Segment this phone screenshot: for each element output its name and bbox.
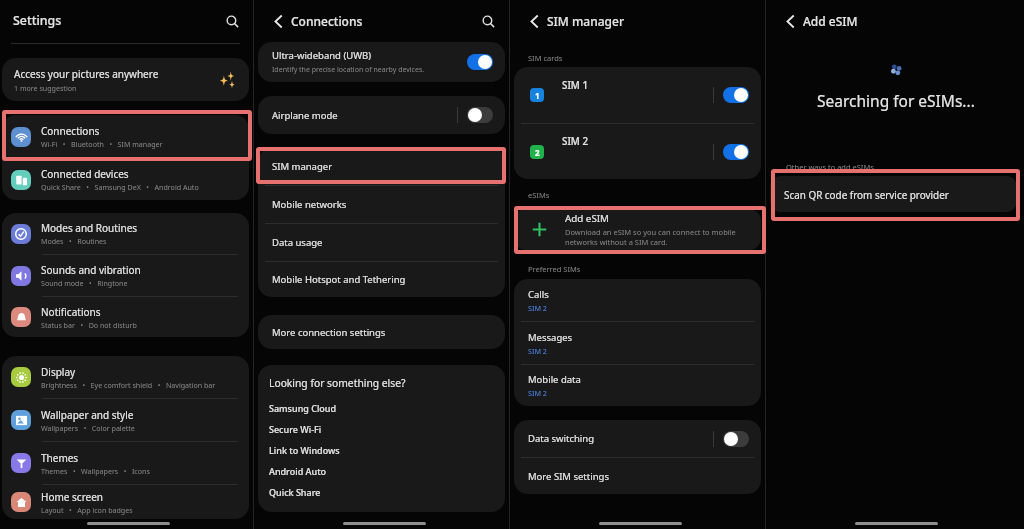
staticText: Quick Share <box>269 486 321 498</box>
staticText: Display <box>41 365 76 379</box>
staticText: Sound mode • Ringtone <box>41 278 128 288</box>
button[interactable]: More connection settings <box>258 315 505 349</box>
staticText: Calls <box>528 288 549 301</box>
staticText: Android Auto <box>269 465 327 477</box>
button[interactable]: Secure Wi-Fi <box>258 418 505 439</box>
button[interactable]: More SIM settings <box>514 458 761 494</box>
button[interactable]: Data usage <box>258 224 505 261</box>
button[interactable]: Search <box>221 10 243 32</box>
staticText: Identify the precise location of nearby … <box>272 65 425 75</box>
staticText: Add eSIM <box>565 212 609 225</box>
staticText: SIM manager <box>547 13 625 29</box>
staticText: Themes • Wallpapers • Icons <box>41 466 150 476</box>
button[interactable]: Messages <box>514 322 761 364</box>
button[interactable]: Switch off <box>723 431 749 447</box>
staticText: Modes • Routines <box>41 236 107 246</box>
staticText: Access your pictures anywhere <box>14 67 159 81</box>
staticText: Data usage <box>272 236 323 249</box>
staticText: Wallpaper and style <box>41 408 134 422</box>
staticText: Status bar • Do not disturb <box>41 320 137 330</box>
button[interactable]: Home screen <box>2 485 249 519</box>
staticText: Samsung Cloud <box>269 402 337 414</box>
button[interactable]: Notifications <box>2 297 249 337</box>
button[interactable]: Data switching <box>514 420 761 457</box>
button[interactable]: Connections <box>2 115 249 158</box>
staticText: Brightness • Eye comfort shield • Naviga… <box>41 380 216 390</box>
button[interactable]: Display <box>2 356 249 398</box>
staticText: Scan QR code from service provider <box>784 188 949 201</box>
button[interactable]: Mobile data <box>514 365 761 406</box>
staticText: Modes and Routines <box>41 221 138 235</box>
staticText: Other ways to add eSIMs <box>786 162 874 172</box>
staticText: SIM manager <box>272 160 333 173</box>
button[interactable]: Add eSIM <box>514 209 761 250</box>
button[interactable]: Modes and Routines <box>2 213 249 254</box>
button[interactable]: Airplane mode <box>258 96 505 134</box>
button[interactable]: Calls <box>514 279 761 321</box>
staticText: Wi-Fi • Bluetooth • SIM manager <box>41 139 163 149</box>
button[interactable]: 1 <box>514 67 761 123</box>
button[interactable]: Access your pictures anywhere <box>2 58 249 101</box>
staticText: 2 <box>535 147 540 158</box>
staticText: Quick Share • Samsung DeX • Android Auto <box>41 182 199 192</box>
button[interactable]: Samsung Cloud <box>258 397 505 418</box>
staticText: 1 more suggestion <box>14 83 77 93</box>
staticText: Notifications <box>41 305 101 319</box>
staticText: Looking for something else? <box>269 376 406 390</box>
staticText: Connected devices <box>41 167 129 181</box>
staticText: Mobile Hotspot and Tethering <box>272 273 406 286</box>
staticText: Layout • App icon badges <box>41 505 133 515</box>
staticText: Settings <box>13 12 62 29</box>
staticText: Themes <box>41 451 79 465</box>
button[interactable]: Scan QR code from service provider <box>770 176 1017 212</box>
staticText: networks without a SIM card. <box>565 237 668 247</box>
button[interactable]: Sounds and vibration <box>2 255 249 296</box>
button[interactable]: Switch on <box>467 54 493 70</box>
staticText: Data switching <box>528 432 713 445</box>
button[interactable]: Back <box>524 11 544 31</box>
staticText: 1 <box>535 90 540 101</box>
button[interactable]: Wallpaper and style <box>2 399 249 441</box>
button[interactable]: Switch off <box>467 107 493 123</box>
button[interactable]: Link to Windows <box>258 439 505 460</box>
button[interactable]: Back <box>780 11 800 31</box>
staticText: SIM cards <box>528 53 563 63</box>
staticText: More connection settings <box>272 326 386 339</box>
staticText: Searching for eSIMs... <box>817 90 975 111</box>
button[interactable]: Mobile Hotspot and Tethering <box>258 262 505 297</box>
staticText: Mobile data <box>528 373 581 386</box>
staticText: Wallpapers • Color palette <box>41 423 135 433</box>
staticText: Ultra-wideband (UWB) <box>272 49 372 62</box>
button[interactable]: Android Auto <box>258 460 505 481</box>
button[interactable]: Switch on <box>723 87 749 103</box>
staticText: Home screen <box>41 490 104 504</box>
staticText: Add eSIM <box>803 13 858 29</box>
staticText: Airplane mode <box>272 109 457 122</box>
staticText: Preferred SIMs <box>528 264 581 274</box>
staticText: Mobile networks <box>272 198 347 211</box>
staticText: Link to Windows <box>269 444 340 456</box>
staticText: SIM 1 <box>562 79 713 92</box>
button[interactable]: 2 <box>514 124 761 179</box>
button[interactable]: Ultra-wideband (UWB) <box>258 42 505 82</box>
button[interactable]: Connected devices <box>2 159 249 200</box>
staticText: Messages <box>528 331 573 344</box>
staticText: More SIM settings <box>528 470 609 483</box>
staticText: Download an eSIM so you can connect to m… <box>565 227 736 237</box>
staticText: SIM 2 <box>528 303 547 313</box>
staticText: Sounds and vibration <box>41 263 141 277</box>
button[interactable]: SIM manager <box>258 148 505 185</box>
button[interactable]: Mobile networks <box>258 186 505 223</box>
staticText: Connections <box>291 13 363 29</box>
button[interactable]: Themes <box>2 442 249 484</box>
staticText: SIM 2 <box>528 346 547 356</box>
button[interactable]: Back <box>268 11 288 31</box>
staticText: Connections <box>41 124 100 138</box>
staticText: Secure Wi-Fi <box>269 423 322 435</box>
staticText: SIM 2 <box>528 388 547 398</box>
staticText: eSIMs <box>528 190 550 200</box>
button[interactable]: Search <box>477 10 499 32</box>
button[interactable]: Quick Share <box>258 481 505 502</box>
button[interactable]: Switch on <box>723 144 749 160</box>
staticText: SIM 2 <box>562 135 713 148</box>
